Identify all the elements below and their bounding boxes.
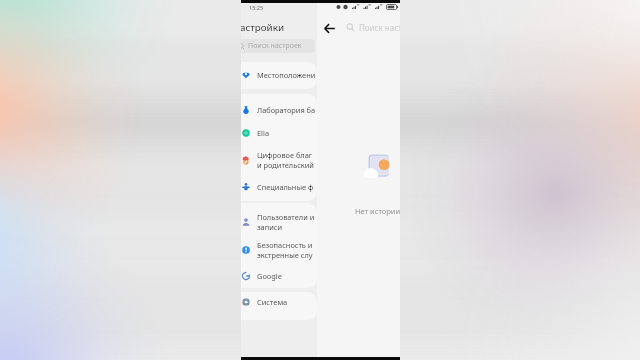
staticText: Google (257, 271, 282, 281)
staticText: Лаборатория ба (257, 105, 316, 115)
staticText: Ella (257, 128, 270, 138)
staticText: Специальные ф (257, 182, 314, 192)
button[interactable]: Специальные ф (241, 177, 317, 197)
staticText: и родительский (257, 160, 314, 170)
staticText: Местоположени (257, 70, 316, 80)
staticText: Система (257, 297, 288, 307)
button[interactable]: Ella (241, 123, 317, 143)
staticText: экстренные слу (257, 250, 313, 260)
button[interactable]: Система (241, 292, 317, 312)
staticText: Пользователи и (257, 212, 315, 222)
button[interactable]: Цифровое благ (241, 148, 317, 172)
staticText: 15:25 (249, 4, 264, 11)
staticText: Поиск настроек (248, 41, 302, 51)
button[interactable]: Местоположени (241, 65, 317, 85)
staticText: Поиск настр (359, 22, 400, 33)
staticText: Нет истории (355, 206, 400, 216)
button[interactable]: Безопасность и (241, 238, 317, 262)
button[interactable]: Back (319, 18, 339, 38)
staticText: записи (257, 222, 283, 232)
button[interactable]: Пользователи и (241, 210, 317, 234)
button[interactable]: Лаборатория ба (241, 100, 317, 120)
staticText: Безопасность и (257, 240, 313, 250)
button[interactable]: Поиск настроек (241, 39, 315, 53)
staticText: астройки (241, 21, 284, 34)
button[interactable]: Google (241, 266, 317, 286)
staticText: Цифровое благ (257, 150, 313, 160)
